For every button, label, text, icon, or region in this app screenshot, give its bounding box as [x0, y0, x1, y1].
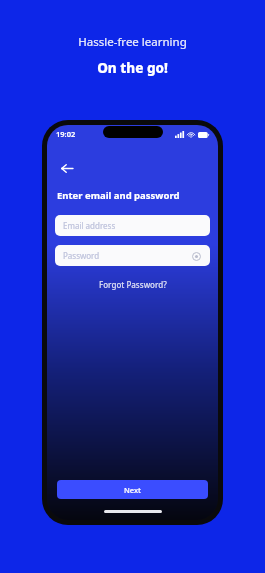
staticText: Next [124, 485, 141, 495]
staticText: Password [63, 250, 100, 261]
button[interactable]: Password [55, 245, 210, 266]
button[interactable]: Email address [55, 215, 210, 236]
button[interactable]: Next [57, 480, 208, 499]
button[interactable]: Forgot Password? [93, 277, 173, 292]
staticText: 19:02 [56, 129, 76, 139]
button[interactable]: Show password [190, 250, 202, 262]
button[interactable]: Back [56, 157, 78, 179]
staticText: Email address [63, 220, 116, 231]
staticText: Enter email and password [57, 189, 180, 202]
staticText: On the go! [97, 59, 168, 77]
staticText: Hassle-free learning [78, 34, 187, 50]
staticText: Forgot Password? [99, 279, 167, 290]
